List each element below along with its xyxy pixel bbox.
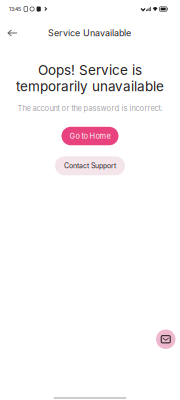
button[interactable]: Email support xyxy=(156,329,175,349)
staticText: Oops! Service is xyxy=(38,62,142,78)
staticText: The account or the password is incorrect… xyxy=(17,104,162,113)
button[interactable]: Go to Home xyxy=(61,127,118,145)
staticText: Go to Home xyxy=(69,131,110,140)
button[interactable]: Back xyxy=(1,24,23,42)
staticText: temporarily unavailable xyxy=(16,78,164,95)
button[interactable]: Contact Support xyxy=(55,156,125,175)
staticText: Service Unavailable xyxy=(48,28,131,38)
staticText: Contact Support xyxy=(64,162,116,170)
staticText: 13:45 xyxy=(9,6,21,12)
